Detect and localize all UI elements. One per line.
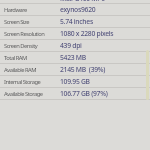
staticText: 2145 MB (39%)	[60, 65, 106, 74]
staticText: 106.77 GB (97%)	[60, 89, 108, 98]
staticText: Total RAM	[4, 54, 27, 62]
button[interactable]: Total RAM	[0, 52, 150, 63]
button[interactable]: Available RAM	[0, 64, 150, 75]
button[interactable]: Screen Resolution	[0, 28, 150, 39]
staticText: 5.74 inches	[60, 17, 93, 26]
staticText: Available Storage	[4, 90, 43, 98]
staticText: 5423 MB	[60, 53, 86, 62]
button[interactable]: Hardware	[0, 4, 150, 15]
button[interactable]: Internal Storage	[0, 76, 150, 87]
staticText: Internal Storage	[4, 78, 41, 86]
staticText: 1080 x 2280 pixels	[60, 29, 114, 38]
staticText: Screen Density	[4, 42, 38, 50]
staticText: Hardware	[4, 6, 27, 14]
staticText: Mali-G400 MP6	[60, 0, 105, 3]
button[interactable]: Screen Size	[0, 16, 150, 27]
staticText: 109.95 GB	[60, 77, 90, 86]
staticText: 439 dpi	[60, 41, 82, 50]
staticText: Available RAM	[4, 66, 37, 74]
staticText: exynos9620	[60, 5, 96, 14]
staticText: Screen Resolution	[4, 30, 45, 38]
button[interactable]: Available Storage	[0, 88, 150, 99]
staticText: Screen Size	[4, 18, 30, 26]
button[interactable]: Screen Density	[0, 40, 150, 51]
